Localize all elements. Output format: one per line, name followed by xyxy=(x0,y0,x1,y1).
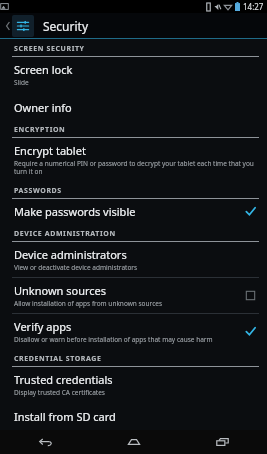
staticText: DEVICE ADMINISTRATION xyxy=(14,229,116,239)
staticText: 14:27 xyxy=(243,1,264,12)
button[interactable]: Screen lock xyxy=(0,57,267,92)
staticText: Display trusted CA certificates xyxy=(14,388,105,397)
button[interactable]: Device administrators xyxy=(0,242,267,277)
staticText: CREDENTIAL STORAGE xyxy=(14,354,102,364)
staticText: Trusted credentials xyxy=(14,372,113,387)
button[interactable]: Trusted credentials xyxy=(0,367,267,402)
staticText: Unknown sources xyxy=(14,283,107,298)
button[interactable]: Navigate up xyxy=(3,14,12,38)
staticText: Device administrators xyxy=(14,247,127,262)
button[interactable]: Verify apps xyxy=(0,314,267,349)
staticText: Owner info xyxy=(14,100,72,115)
staticText: Verify apps xyxy=(14,319,72,334)
staticText: Install from SD card xyxy=(14,409,116,424)
button[interactable]: Install from SD card xyxy=(0,404,267,430)
staticText: SCREEN SECURITY xyxy=(14,44,85,54)
button[interactable]: Recent apps xyxy=(178,430,267,454)
staticText: ENCRYPTION xyxy=(14,125,66,135)
staticText: Require a numerical PIN or password to d… xyxy=(14,159,257,176)
button[interactable]: Back xyxy=(0,430,89,454)
staticText: Screen lock xyxy=(14,62,73,77)
staticText: Make passwords visible xyxy=(14,204,136,219)
button[interactable]: Settings xyxy=(12,15,34,37)
staticText: Disallow or warn before installation of … xyxy=(14,335,213,344)
staticText: Security xyxy=(43,18,89,34)
staticText: View or deactivate device administrators xyxy=(14,263,138,272)
staticText: Slide xyxy=(14,78,29,87)
staticText: PASSWORDS xyxy=(14,186,62,196)
button[interactable]: Encrypt tablet xyxy=(0,138,267,181)
staticText: Encrypt tablet xyxy=(14,143,86,158)
button[interactable]: Make passwords visible xyxy=(0,199,267,224)
staticText: Allow installation of apps from unknown … xyxy=(14,299,163,308)
button[interactable]: Unknown sources xyxy=(0,278,267,313)
button[interactable]: Home xyxy=(89,430,178,454)
button[interactable]: Owner info xyxy=(0,95,267,120)
